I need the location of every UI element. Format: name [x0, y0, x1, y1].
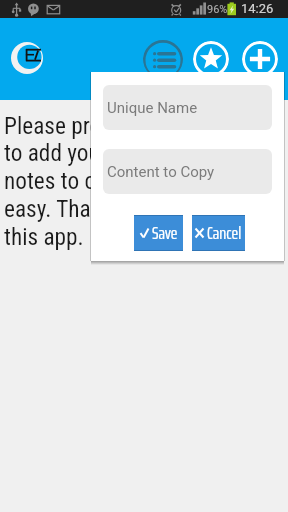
- staticText: 96%: [207, 3, 228, 16]
- button[interactable]: Cancel: [192, 216, 245, 250]
- staticText: 14:26: [241, 1, 274, 16]
- staticText: Save: [152, 219, 178, 247]
- button[interactable]: Favorites: [193, 41, 229, 77]
- staticText: Cancel: [207, 219, 242, 247]
- staticText: Please press the + button to add your ow…: [4, 112, 245, 251]
- button[interactable]: Save: [134, 216, 183, 250]
- staticText: Content to Copy: [107, 163, 215, 181]
- button[interactable]: Unique Name: [103, 85, 272, 130]
- other: App logo: [11, 42, 43, 74]
- button[interactable]: Content to Copy: [103, 149, 272, 194]
- button[interactable]: List: [143, 39, 183, 79]
- staticText: Unique Name: [107, 99, 198, 117]
- button[interactable]: Add: [242, 41, 278, 77]
